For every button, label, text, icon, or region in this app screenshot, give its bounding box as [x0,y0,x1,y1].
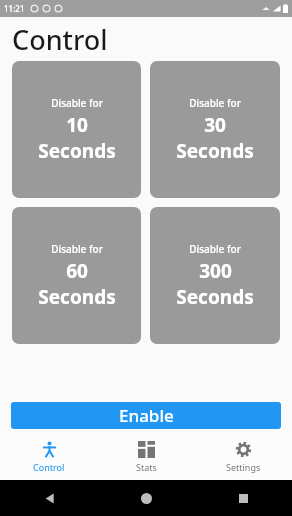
button[interactable]: Control [0,434,98,480]
staticText: 30 [204,112,226,138]
button[interactable]: Disable for [12,207,141,344]
staticText: Disable for [51,242,103,256]
staticText: Disable for [189,242,241,256]
staticText: Seconds [176,284,254,310]
staticText: Settings [226,461,261,473]
staticText: Stats [136,461,157,473]
staticText: Seconds [176,138,254,164]
staticText: Disable for [189,96,241,110]
staticText: Seconds [38,284,116,310]
other: Home [141,493,152,504]
button[interactable]: Stats [98,434,195,480]
staticText: 60 [66,258,88,284]
staticText: Seconds [38,138,116,164]
staticText: 300 [199,258,232,284]
button[interactable]: Enable [11,402,281,429]
staticText: Control [12,21,108,58]
button[interactable]: Disable for [12,61,141,198]
button[interactable]: Disable for [150,207,280,344]
staticText: Enable [119,404,174,427]
button[interactable]: Disable for [150,61,280,198]
staticText: Control [33,461,65,473]
staticText: Disable for [51,96,103,110]
other: Back [44,493,55,504]
staticText: 10 [66,112,88,138]
button[interactable]: Settings [195,434,292,480]
staticText: 11:21 [4,3,25,14]
